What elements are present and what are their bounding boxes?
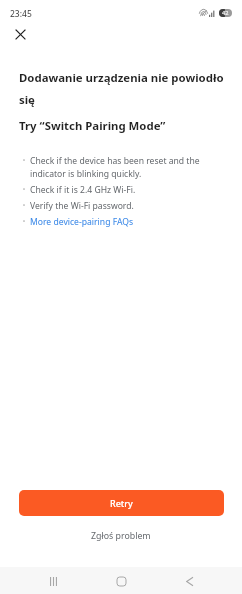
staticText: Verify the Wi-Fi password. (30, 198, 134, 211)
staticText: Try “Switch Pairing Mode” (19, 113, 166, 135)
staticText: Check if the device has been reset and t… (30, 153, 229, 179)
button[interactable]: Recents (33, 569, 73, 594)
button[interactable]: More device-pairing FAQs (19, 214, 229, 227)
button[interactable]: Back (169, 569, 209, 594)
staticText: More device-pairing FAQs (30, 214, 134, 227)
staticText: Zgłoś problem (91, 530, 151, 542)
staticText: Retry (110, 497, 133, 509)
staticText: 42 (222, 9, 229, 17)
staticText: Dodawanie urządzenia nie powiodło się (19, 65, 229, 109)
staticText: Check if it is 2.4 GHz Wi-Fi. (30, 182, 136, 195)
button[interactable]: Retry (19, 490, 224, 516)
button[interactable]: Zgłoś problem (0, 523, 242, 548)
button[interactable]: Home (101, 569, 141, 594)
button[interactable]: Close (4, 18, 36, 50)
staticText: 23:45 (10, 8, 32, 20)
